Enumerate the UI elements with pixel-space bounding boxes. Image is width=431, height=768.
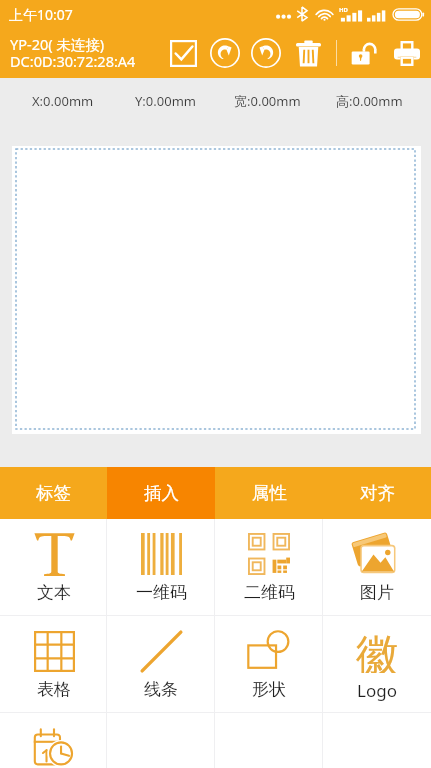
staticText: 上午10:07 bbox=[9, 5, 73, 24]
staticText: X:0.00mm bbox=[32, 92, 94, 110]
staticText: 线条 bbox=[144, 679, 178, 700]
button[interactable]: Select all bbox=[162, 28, 204, 78]
button[interactable]: 插入 bbox=[107, 467, 215, 519]
staticText: DC:0D:30:72:28:A4 bbox=[10, 51, 136, 71]
staticText: 图片 bbox=[360, 582, 394, 603]
staticText: YP-20( 未连接) bbox=[10, 34, 105, 54]
staticText: 对齐 bbox=[360, 482, 395, 504]
staticText: 文本 bbox=[37, 582, 71, 603]
button[interactable]: 文本 bbox=[0, 519, 107, 615]
staticText: 形状 bbox=[252, 679, 286, 700]
staticText: 标签 bbox=[36, 482, 71, 504]
button[interactable]: 对齐 bbox=[323, 467, 431, 519]
button[interactable]: 图片 bbox=[323, 519, 431, 615]
button[interactable]: Delete bbox=[286, 28, 330, 78]
staticText: 一维码 bbox=[136, 582, 187, 603]
button[interactable]: 属性 bbox=[215, 467, 323, 519]
button[interactable]: 一维码 bbox=[107, 519, 215, 615]
button[interactable]: 时间 bbox=[0, 713, 107, 768]
button[interactable]: 徽 bbox=[323, 616, 431, 712]
button[interactable]: Redo bbox=[204, 28, 245, 78]
button[interactable]: Print bbox=[385, 28, 429, 78]
button[interactable]: 二维码 bbox=[215, 519, 323, 615]
button[interactable]: Unlock bbox=[343, 28, 385, 78]
staticText: 徽 bbox=[356, 629, 399, 673]
staticText: 属性 bbox=[252, 482, 287, 504]
staticText: 高:0.00mm bbox=[336, 92, 403, 110]
staticText: HD bbox=[339, 6, 348, 14]
staticText: 二维码 bbox=[244, 582, 295, 603]
staticText: 宽:0.00mm bbox=[234, 92, 301, 110]
button[interactable]: 形状 bbox=[215, 616, 323, 712]
staticText: Logo bbox=[357, 679, 397, 702]
button[interactable]: Undo bbox=[245, 28, 286, 78]
staticText: Y:0.00mm bbox=[135, 92, 196, 110]
staticText: 表格 bbox=[37, 679, 71, 700]
button[interactable]: 标签 bbox=[0, 467, 107, 519]
staticText: 插入 bbox=[144, 482, 179, 504]
button[interactable]: 线条 bbox=[107, 616, 215, 712]
button[interactable]: 表格 bbox=[0, 616, 107, 712]
